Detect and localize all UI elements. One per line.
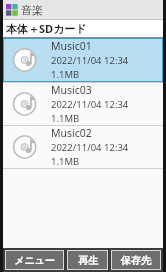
staticText: 2022/11/04 12:34 (51, 98, 129, 111)
other: 音楽アプリ (6, 4, 18, 16)
staticText: 音楽 (21, 3, 43, 17)
staticText: 再生 (78, 254, 98, 267)
button[interactable]: Music01 (3, 38, 163, 82)
staticText: メニュー (14, 254, 55, 267)
button[interactable]: Music03 (3, 83, 163, 125)
staticText: Music03 (51, 83, 92, 97)
button[interactable]: Music02 (3, 126, 163, 168)
staticText: 1.1MB (51, 68, 80, 81)
button[interactable]: 再生 (67, 250, 108, 270)
staticText: 1.1MB (51, 155, 80, 168)
button[interactable]: 保存先 (111, 250, 161, 270)
staticText: Music02 (51, 126, 92, 140)
staticText: 保存先 (121, 254, 151, 267)
staticText: 本体＋SDカード (6, 21, 87, 36)
staticText: 1.1MB (51, 112, 80, 125)
staticText: Music01 (51, 39, 92, 53)
staticText: 2022/11/04 12:34 (51, 54, 129, 67)
button[interactable]: メニュー (5, 250, 64, 270)
staticText: 2022/11/04 12:34 (51, 141, 129, 154)
